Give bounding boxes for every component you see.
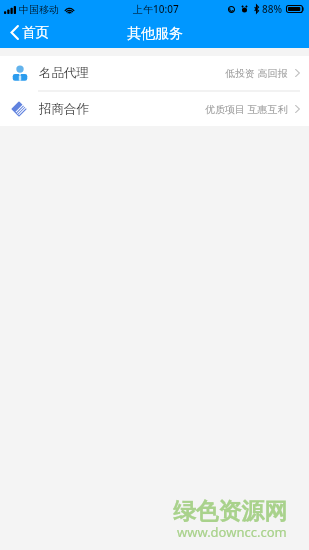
staticText: 上午10:07: [133, 2, 179, 16]
staticText: 低投资 高回报: [225, 66, 288, 80]
staticText: 优质项目 互惠互利: [205, 102, 288, 116]
staticText: 名品代理: [39, 65, 89, 81]
staticText: www.downcc.com: [177, 523, 287, 541]
button[interactable]: 招商合作: [0, 92, 309, 126]
staticText: 其他服务: [127, 25, 183, 43]
button[interactable]: 名品代理: [0, 56, 309, 90]
staticText: 首页: [22, 24, 49, 41]
staticText: 绿色资源网: [173, 497, 287, 526]
staticText: 招商合作: [39, 101, 89, 117]
staticText: 88%: [262, 2, 282, 16]
button[interactable]: Back: [0, 23, 59, 46]
staticText: 中国移动: [19, 3, 59, 16]
other: Back: [10, 25, 19, 40]
